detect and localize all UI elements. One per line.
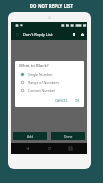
staticText: DO NOT REPLY LIST xyxy=(0,3,103,9)
staticText: Range of Numbers xyxy=(28,80,59,85)
staticText: Single Number xyxy=(28,72,53,77)
button[interactable]: Done xyxy=(51,132,85,140)
staticText: Add xyxy=(27,134,34,138)
button[interactable]: Home xyxy=(78,29,87,40)
button[interactable]: Back xyxy=(23,144,32,153)
button[interactable]: Home xyxy=(45,144,54,153)
button[interactable]: Contact Number xyxy=(15,86,84,94)
button[interactable]: CANCEL xyxy=(53,98,70,104)
button[interactable]: Add xyxy=(13,132,47,140)
button[interactable]: Menu xyxy=(11,29,23,40)
staticText: CANCEL xyxy=(55,99,68,103)
button[interactable]: Single Number xyxy=(15,70,84,78)
button[interactable]: OK xyxy=(73,98,82,104)
button[interactable]: List xyxy=(70,29,78,40)
staticText: What to Block? xyxy=(19,63,49,69)
staticText: OK xyxy=(75,99,80,103)
staticText: Don't Reply List xyxy=(23,32,70,37)
button[interactable]: Range of Numbers xyxy=(15,78,84,86)
button[interactable]: Recents xyxy=(66,144,75,153)
staticText: Done xyxy=(64,134,73,138)
staticText: Contact Number xyxy=(28,88,56,93)
